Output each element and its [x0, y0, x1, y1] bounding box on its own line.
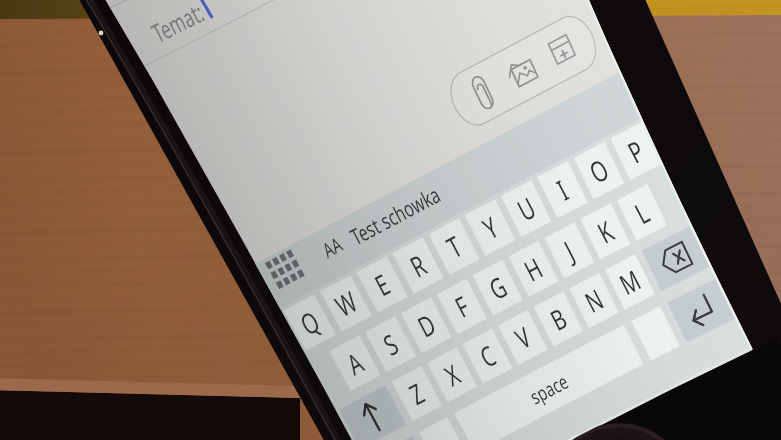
button[interactable]: Mail composer with on-screen keyboard: [0, 0, 781, 440]
